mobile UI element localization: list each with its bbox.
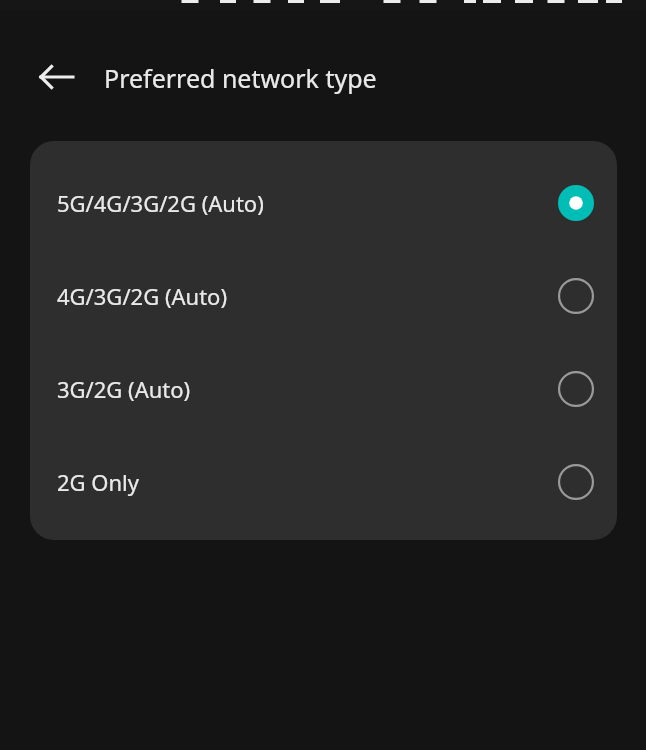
staticText: 4G/3G/2G (Auto) bbox=[57, 281, 227, 311]
button[interactable]: Back bbox=[36, 56, 78, 98]
button[interactable]: 4G/3G/2G (Auto) bbox=[30, 249, 617, 342]
button[interactable]: 5G/4G/3G/2G (Auto) bbox=[30, 156, 617, 249]
staticText: 2G Only bbox=[57, 467, 139, 497]
staticText: 3G/2G (Auto) bbox=[57, 374, 191, 404]
staticText: 5G/4G/3G/2G (Auto) bbox=[57, 188, 264, 218]
button[interactable]: 3G/2G (Auto) bbox=[30, 342, 617, 435]
staticText: Preferred network type bbox=[104, 61, 377, 95]
button[interactable]: 2G Only bbox=[30, 435, 617, 528]
